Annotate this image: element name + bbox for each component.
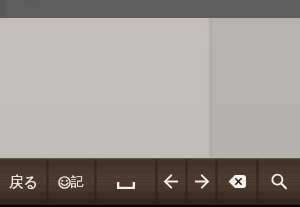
staticText: 戻る (9, 173, 39, 191)
button[interactable]: スペース (95, 158, 156, 205)
button[interactable]: 戻る (0, 158, 47, 205)
staticText: 記 (71, 174, 84, 190)
button[interactable]: カーソルを左へ (156, 158, 186, 205)
button[interactable]: 検索 (257, 158, 300, 205)
button[interactable]: 絵文字・記号 (47, 158, 95, 205)
button[interactable]: 削除 (216, 158, 257, 205)
button[interactable]: カーソルを右へ (186, 158, 216, 205)
